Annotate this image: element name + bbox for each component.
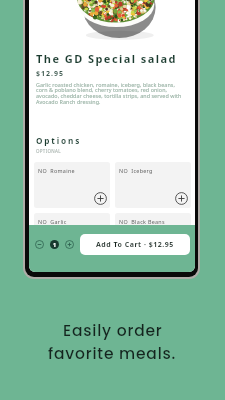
- staticText: NO Iceberg: [119, 167, 153, 174]
- button[interactable]: NO Black Beans: [115, 213, 191, 259]
- button[interactable]: Add To Cart · $12.95: [80, 234, 190, 255]
- staticText: Easily order: [63, 320, 163, 342]
- staticText: 1: [53, 241, 57, 248]
- staticText: NO Black Beans: [119, 218, 165, 225]
- button[interactable]: Add NO Romaine: [94, 192, 107, 205]
- button[interactable]: NO Romaine: [34, 162, 110, 208]
- staticText: Options: [36, 135, 82, 146]
- button[interactable]: NO Garlic: [34, 213, 110, 259]
- staticText: The GD Special salad: [36, 51, 178, 66]
- staticText: NO Garlic: [38, 218, 67, 225]
- staticText: $12.95: [36, 69, 64, 79]
- staticText: Add To Cart · $12.95: [96, 240, 174, 250]
- button[interactable]: Decrease quantity: [35, 240, 44, 249]
- button[interactable]: Add NO Black Beans: [175, 243, 188, 256]
- button[interactable]: Add NO Garlic: [94, 243, 107, 256]
- staticText: NO Romaine: [38, 167, 75, 174]
- button[interactable]: Increase quantity: [65, 240, 74, 249]
- staticText: favorite meals.: [48, 343, 177, 365]
- button[interactable]: NO Iceberg: [115, 162, 191, 208]
- staticText: Garlic roasted chicken, romaine, iceberg…: [36, 81, 182, 106]
- button[interactable]: 1: [50, 240, 59, 249]
- button[interactable]: Add NO Iceberg: [175, 192, 188, 205]
- staticText: OPTIONAL: [36, 148, 61, 154]
